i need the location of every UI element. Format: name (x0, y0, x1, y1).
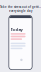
staticText: Take the stress out of getting things do… (0, 5, 41, 9)
staticText: every single day (9, 9, 32, 13)
staticText: Today (11, 27, 23, 32)
